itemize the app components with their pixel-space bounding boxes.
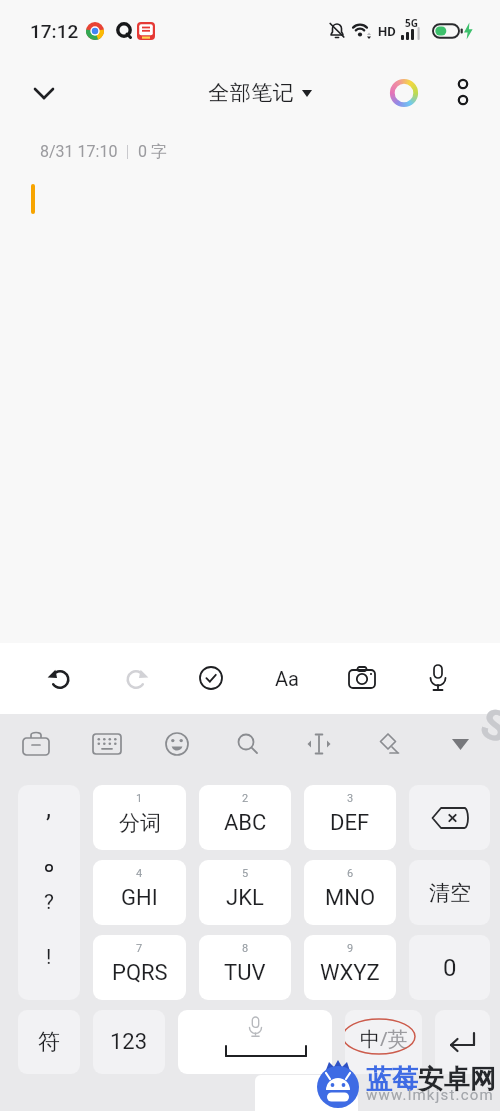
staticText: 分词 bbox=[119, 810, 161, 836]
staticText: WXYZ bbox=[320, 960, 380, 986]
button[interactable]: 4 bbox=[93, 860, 186, 925]
staticText: 符 bbox=[38, 1028, 60, 1056]
staticText: 全部笔记 bbox=[208, 80, 294, 106]
button[interactable] bbox=[38, 656, 82, 700]
button[interactable]: 6 bbox=[304, 860, 396, 925]
staticText: 8 bbox=[242, 942, 249, 955]
button[interactable] bbox=[388, 77, 420, 109]
button[interactable]: 7 bbox=[93, 935, 186, 1000]
button[interactable]: 中/英 bbox=[345, 1010, 422, 1074]
staticText: ? bbox=[44, 890, 54, 915]
button[interactable] bbox=[299, 724, 339, 764]
staticText: 6 bbox=[347, 867, 354, 880]
button[interactable] bbox=[409, 785, 490, 850]
button[interactable] bbox=[435, 1010, 490, 1074]
button[interactable]: 0 bbox=[409, 935, 490, 1000]
staticText: , bbox=[46, 793, 52, 823]
button[interactable] bbox=[28, 78, 60, 108]
staticText: 5G bbox=[405, 16, 418, 28]
staticText: 17:12 bbox=[30, 20, 79, 42]
button[interactable]: Aa bbox=[265, 656, 309, 700]
staticText: JKL bbox=[226, 885, 264, 911]
staticText: 5 bbox=[242, 867, 249, 880]
staticText: 3 bbox=[347, 792, 354, 805]
staticText: 123 bbox=[110, 1029, 148, 1055]
button[interactable] bbox=[157, 724, 197, 764]
button[interactable]: 8 bbox=[199, 935, 291, 1000]
button[interactable] bbox=[16, 724, 56, 764]
staticText: 2 bbox=[242, 792, 249, 805]
staticText: TUV bbox=[224, 960, 266, 986]
button[interactable] bbox=[340, 656, 384, 700]
button[interactable]: 3 bbox=[304, 785, 396, 850]
button[interactable] bbox=[189, 656, 233, 700]
staticText: MNO bbox=[325, 885, 376, 911]
button[interactable] bbox=[228, 724, 268, 764]
staticText: HD bbox=[378, 24, 396, 39]
staticText: S bbox=[475, 698, 500, 753]
button[interactable] bbox=[114, 656, 158, 700]
button[interactable]: , bbox=[18, 785, 80, 1000]
staticText: 中/英 bbox=[360, 1025, 408, 1052]
button[interactable] bbox=[87, 724, 127, 764]
button[interactable]: 5 bbox=[199, 860, 291, 925]
staticText: GHI bbox=[121, 885, 158, 911]
staticText: 8/31 17:10 bbox=[40, 142, 118, 161]
staticText: www.lmkjst.com bbox=[366, 1086, 494, 1104]
staticText: 7 bbox=[136, 942, 143, 955]
staticText: 4 bbox=[136, 867, 143, 880]
staticText: ABC bbox=[224, 810, 267, 836]
button[interactable]: 符 bbox=[18, 1010, 80, 1074]
button[interactable]: 123 bbox=[93, 1010, 165, 1074]
staticText: 1 bbox=[136, 792, 143, 805]
button[interactable] bbox=[440, 724, 480, 764]
staticText: ! bbox=[46, 945, 52, 970]
staticText: 0 bbox=[443, 954, 457, 982]
staticText: PQRS bbox=[112, 960, 168, 986]
staticText: DEF bbox=[330, 810, 370, 836]
button[interactable] bbox=[448, 75, 478, 111]
button[interactable]: 清空 bbox=[409, 860, 490, 925]
button[interactable]: 2 bbox=[199, 785, 291, 850]
staticText: 清空 bbox=[429, 880, 471, 906]
staticText: 9 bbox=[347, 942, 354, 955]
button[interactable]: 全部笔记 bbox=[185, 74, 335, 112]
button[interactable]: 9 bbox=[304, 935, 396, 1000]
button[interactable] bbox=[416, 656, 460, 700]
button[interactable] bbox=[369, 724, 409, 764]
staticText: 蓝莓安卓网 bbox=[366, 1063, 496, 1093]
button[interactable]: 1 bbox=[93, 785, 186, 850]
button[interactable] bbox=[178, 1010, 332, 1074]
staticText: 0 字 bbox=[138, 142, 167, 161]
staticText: Aa bbox=[275, 667, 299, 690]
